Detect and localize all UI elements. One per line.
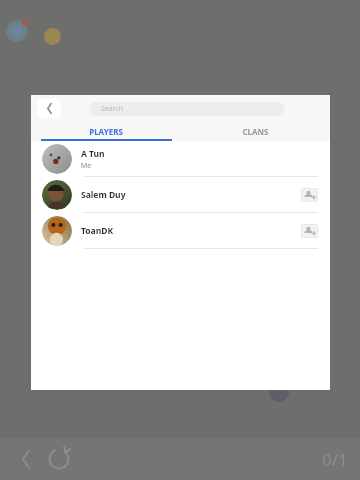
staticText: Salem Duy: [81, 189, 126, 201]
staticText: Search: [101, 104, 124, 114]
staticText: PLAYERS: [89, 126, 123, 137]
staticText: Me: [81, 161, 92, 171]
button[interactable]: Back: [37, 99, 61, 118]
staticText: ToanDK: [81, 225, 114, 237]
button[interactable]: PLAYERS: [31, 122, 180, 141]
staticText: A Tun: [81, 148, 105, 160]
staticText: 0/1: [322, 448, 348, 471]
button[interactable]: Salem Duy: [31, 177, 330, 213]
button[interactable]: Search: [89, 102, 285, 116]
button[interactable]: Add friend: [301, 224, 318, 238]
staticText: CLANS: [242, 126, 269, 137]
button[interactable]: A Tun: [31, 141, 330, 177]
button[interactable]: Add friend: [301, 188, 318, 202]
button[interactable]: Back: [12, 445, 40, 473]
button[interactable]: Refresh: [44, 444, 74, 474]
button[interactable]: ToanDK: [31, 213, 330, 249]
button[interactable]: CLANS: [180, 122, 330, 141]
